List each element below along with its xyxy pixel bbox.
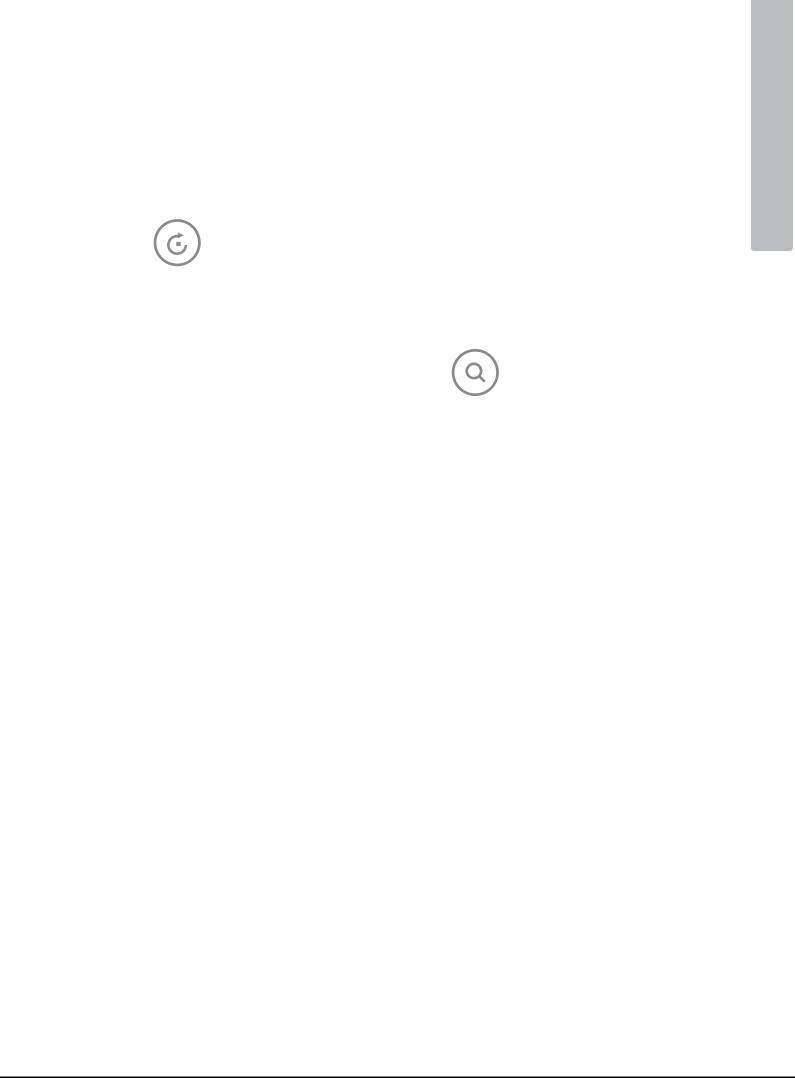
button[interactable]: Refresh	[155, 220, 199, 265]
button[interactable]: Search	[453, 350, 497, 395]
